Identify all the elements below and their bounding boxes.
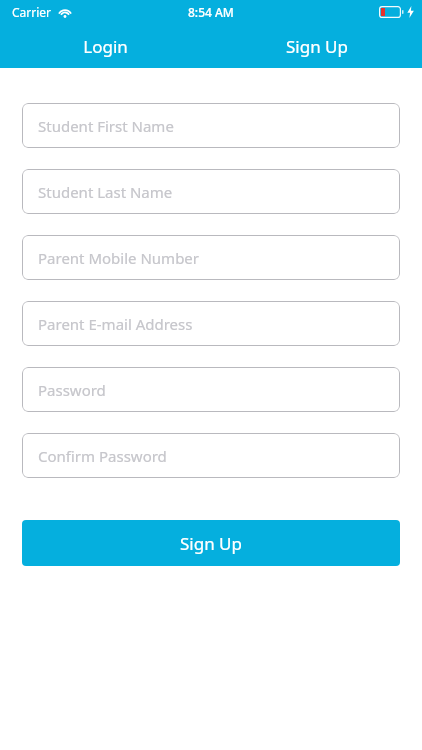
staticText: Password [38,380,106,400]
staticText: Carrier [12,4,52,20]
button[interactable]: Student Last Name [22,169,400,214]
staticText: Student First Name [38,116,174,136]
staticText: Sign Up [286,35,348,58]
button[interactable]: Sign Up [211,24,422,68]
staticText: Student Last Name [38,182,173,202]
button[interactable]: Password [22,367,400,412]
button[interactable]: Sign Up [22,520,400,566]
button[interactable]: Login [0,24,211,68]
staticText: 8:54 AM [188,4,234,20]
other: Battery low [379,6,404,18]
other: Charging [407,6,414,18]
staticText: Sign Up [180,532,242,555]
other: Wi-Fi signal [58,7,72,18]
staticText: Parent Mobile Number [38,248,200,268]
button[interactable]: Student First Name [22,103,400,148]
staticText: Parent E-mail Address [38,314,193,334]
button[interactable]: Parent Mobile Number [22,235,400,280]
staticText: Confirm Password [38,446,167,466]
button[interactable]: Confirm Password [22,433,400,478]
staticText: Login [83,35,128,58]
button[interactable]: Parent E-mail Address [22,301,400,346]
